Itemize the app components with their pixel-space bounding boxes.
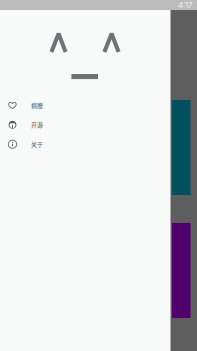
button[interactable]: 开源 [0,115,170,134]
staticText: 开源 [31,121,43,129]
button[interactable]: 关于 [0,134,170,154]
staticText: 捐赠 [31,101,43,110]
staticText: 关于 [31,140,43,148]
staticText: 4:17 [178,0,193,10]
button[interactable]: 捐赠 [0,96,170,115]
